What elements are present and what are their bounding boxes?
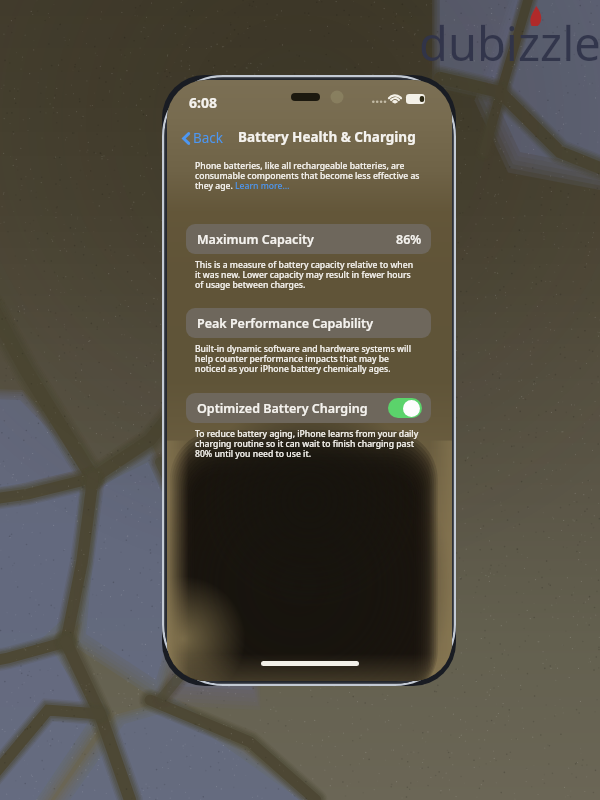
button[interactable]: Optimized Battery Charging — [186, 393, 431, 423]
staticText: This is a measure of battery capacity re… — [195, 259, 420, 290]
staticText: To reduce battery aging, iPhone learns f… — [195, 428, 420, 459]
staticText: Phone batteries, like all rechargeable b… — [195, 160, 420, 191]
button[interactable]: Optimized Battery Charging toggle — [388, 398, 422, 418]
button[interactable]: Maximum Capacity — [186, 224, 431, 254]
staticText: Back — [193, 129, 224, 147]
staticText: Optimized Battery Charging — [197, 400, 368, 417]
staticText: 86% — [396, 231, 422, 248]
staticText: Maximum Capacity — [197, 231, 314, 248]
staticText: Peak Performance Capability — [197, 315, 374, 332]
staticText: Built-in dynamic software and hardware s… — [195, 343, 420, 374]
staticText: dubizzle — [419, 11, 600, 75]
staticText: Battery Health & Charging — [238, 128, 416, 146]
button[interactable]: Peak Performance Capability — [186, 308, 431, 338]
staticText: 6:08 — [189, 93, 217, 112]
button[interactable]: Back — [179, 126, 227, 150]
